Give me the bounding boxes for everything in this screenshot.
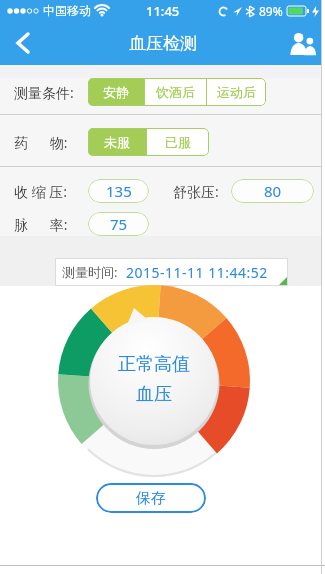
staticText: 未服 [104,134,130,150]
staticText: 135 [106,181,132,201]
staticText: 药 物: [14,133,68,152]
button[interactable]: 饮酒后 [145,78,206,106]
staticText: 饮酒后 [156,84,195,100]
staticText: 11:45 [146,2,180,20]
button[interactable] [287,28,317,58]
button[interactable]: 已服 [147,128,209,156]
staticText: 脉 率: [14,215,68,234]
button[interactable]: 未服 [88,128,146,156]
staticText: 75 [110,214,128,234]
staticText: 中国移动 [43,3,91,18]
staticText: 2015-11-11 11:44:52 [126,263,268,282]
staticText: 运动后 [217,84,256,100]
button[interactable]: 75 [88,212,149,236]
staticText: 血压 [136,383,172,406]
staticText: 正常高值 [118,353,190,376]
staticText: 89% [259,3,283,19]
button[interactable] [8,29,36,57]
button[interactable]: 安静 [88,78,144,106]
staticText: 舒张压: [173,182,219,201]
staticText: 安静 [103,84,129,100]
staticText: 80 [264,181,282,201]
staticText: 已服 [165,134,191,150]
button[interactable]: 测量时间: [55,258,288,286]
staticText: 收 缩 压: [14,182,68,201]
staticText: 保存 [136,489,166,508]
button[interactable]: 保存 [96,483,206,513]
staticText: 测量条件: [14,83,74,102]
staticText: 血压检测 [129,33,197,54]
button[interactable]: 运动后 [207,78,266,106]
button[interactable]: 135 [88,179,149,203]
button[interactable]: 80 [231,179,314,203]
staticText: 测量时间: [62,263,118,281]
